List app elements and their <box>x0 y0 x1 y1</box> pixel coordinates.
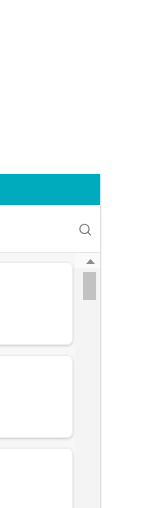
button[interactable] <box>0 355 73 438</box>
button[interactable]: Scroll up <box>75 253 100 268</box>
button[interactable]: Search <box>72 218 96 242</box>
button[interactable] <box>0 448 73 508</box>
button[interactable] <box>0 262 73 345</box>
